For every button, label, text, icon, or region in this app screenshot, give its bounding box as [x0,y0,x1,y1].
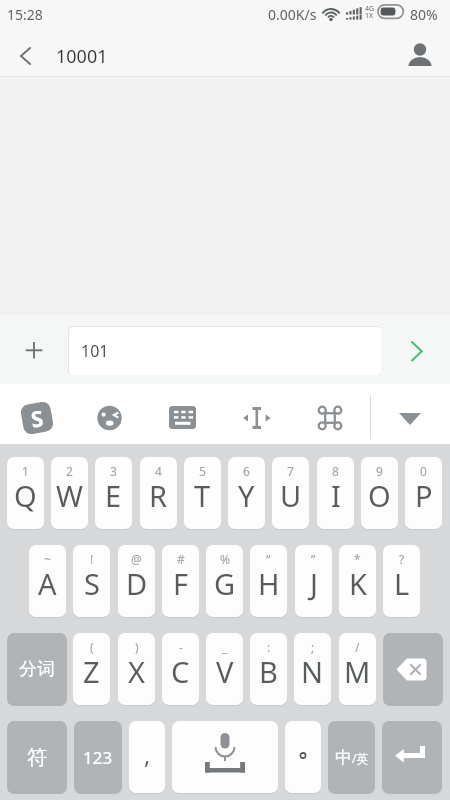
button[interactable]: @ [118,545,155,617]
staticText: R [149,476,168,515]
staticText: K [349,564,367,603]
staticText: ( [90,639,94,655]
staticText: /英 [352,750,369,766]
button[interactable] [285,721,321,793]
button[interactable]: ” [295,545,332,617]
staticText: M [344,652,371,691]
staticText: 6 [243,463,250,479]
staticText: P [415,476,433,515]
button[interactable]: 分词 [7,633,67,706]
staticText: 7 [287,463,294,479]
staticText: G [214,564,236,603]
staticText: 9 [376,463,383,479]
button[interactable]: 9 [361,457,398,529]
staticText: D [126,564,148,603]
staticText: ” [311,551,316,567]
staticText: # [177,551,185,567]
staticText: : [267,639,271,655]
button[interactable]: 0 [405,457,442,529]
staticText: S [28,402,47,434]
button[interactable]: 7 [272,457,309,529]
staticText: 分词 [19,658,55,681]
staticText: / [355,639,360,655]
staticText: Q [14,476,37,515]
button[interactable]: ( [73,633,110,705]
staticText: O [368,476,391,515]
button[interactable] [238,396,276,440]
button[interactable]: ~ [29,545,66,617]
button[interactable]: ? [383,545,420,617]
staticText: 8 [332,463,339,479]
staticText: S [84,564,100,603]
button[interactable]: 符 [7,721,67,794]
staticText: 3 [110,463,117,479]
button[interactable]: : [250,633,287,705]
button[interactable]: S [17,398,56,437]
button[interactable] [311,399,349,437]
staticText: J [310,564,318,603]
staticText: ) [135,639,139,655]
staticText: N [301,652,324,691]
staticText: % [220,551,230,567]
button[interactable] [172,721,278,793]
staticText: T [194,476,211,515]
staticText: 10001 [56,44,108,69]
staticText: ? [399,551,405,567]
button[interactable] [402,38,438,74]
button[interactable]: ) [118,633,155,705]
button[interactable]: 6 [228,457,265,529]
staticText: 4 [155,463,162,479]
button[interactable]: * [339,545,376,617]
button[interactable]: 3 [95,457,132,529]
button[interactable]: 中 [328,721,375,794]
button[interactable] [383,633,443,706]
button[interactable]: 8 [317,457,354,529]
button[interactable]: “ [250,545,287,617]
button[interactable] [14,330,54,370]
button[interactable]: ; [294,633,331,705]
staticText: “ [266,551,271,567]
button[interactable] [395,332,431,368]
staticText: , [144,739,151,770]
staticText: 15:28 [7,5,43,24]
staticText: E [105,476,122,515]
staticText: ~ [44,551,51,567]
staticText: 101 [81,340,109,362]
button[interactable]: ! [73,545,110,617]
button[interactable]: 2 [51,457,88,529]
button[interactable] [8,40,42,72]
staticText: L [394,564,410,603]
button[interactable]: % [206,545,243,617]
button[interactable]: # [162,545,199,617]
button[interactable]: 1 [7,457,44,529]
button[interactable] [169,406,197,430]
staticText: 4G [365,4,375,14]
button[interactable]: - [162,633,199,705]
button[interactable]: 101 [69,327,381,375]
button[interactable]: 5 [184,457,221,529]
button[interactable] [390,400,430,430]
button[interactable]: 123 [74,721,122,794]
button[interactable]: 4 [140,457,177,529]
staticText: 5 [199,463,206,479]
staticText: Y [238,476,255,515]
button[interactable] [90,399,129,438]
staticText: 123 [83,746,113,769]
staticText: 1 [22,463,29,479]
staticText: Z [83,652,100,691]
staticText: C [171,652,190,691]
staticText: V [216,652,234,691]
staticText: @ [131,551,142,567]
staticText: U [280,476,302,515]
staticText: F [173,564,189,603]
staticText: 0.00K/s [268,5,317,24]
button[interactable]: _ [206,633,243,705]
staticText: X [128,652,145,691]
button[interactable]: , [129,721,165,793]
staticText: 80% [410,5,438,24]
staticText: - [179,639,183,655]
button[interactable] [382,721,442,794]
staticText: 0 [420,463,427,479]
staticText: ; [311,639,315,655]
button[interactable]: / [339,633,376,705]
